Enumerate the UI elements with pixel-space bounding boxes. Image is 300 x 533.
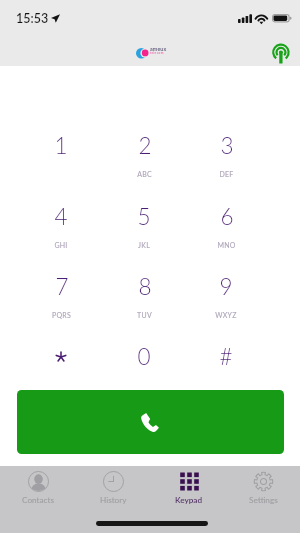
staticText: 3 [220,132,234,159]
staticText: PQRS [52,311,71,319]
staticText: 1 [54,132,68,159]
button[interactable]: 2 [105,132,183,188]
staticText: History [100,495,127,505]
button[interactable]: 3 [187,132,265,188]
button[interactable]: Contacts [1,469,75,509]
button[interactable]: 6 [187,203,265,259]
button[interactable]: Keypad [152,469,226,509]
staticText: DEF [219,170,234,178]
staticText: 5 [137,203,151,230]
staticText: ABC [137,170,152,178]
staticText: Settings [249,495,278,505]
staticText: Contacts [22,495,54,505]
button[interactable]: Connection status [269,41,292,66]
button[interactable]: 9 [187,273,265,329]
staticText: MNO [217,241,236,249]
button[interactable]: 8 [105,273,183,329]
button[interactable]: 4 [22,203,100,259]
staticText: JKL [138,241,150,249]
button[interactable]: Call [17,390,284,454]
staticText: WXYZ [215,311,237,319]
button[interactable]: 1 [22,132,100,188]
staticText: GHI [54,241,68,249]
button[interactable]: 7 [22,273,100,329]
button[interactable]: Settings [226,469,300,509]
staticText: # [219,343,233,370]
staticText: ameux [150,46,167,52]
staticText: 6 [220,203,234,230]
staticText: 4 [54,203,68,230]
button[interactable]: # [187,343,265,399]
staticText: 8 [138,273,152,300]
staticText: telecom [150,51,164,55]
staticText: 9 [219,273,233,300]
staticText: TUV [137,311,152,319]
staticText: 0 [137,343,151,370]
button[interactable] [22,343,100,399]
button[interactable]: 5 [105,203,183,259]
staticText: 2 [138,132,152,159]
staticText: Keypad [175,495,203,505]
button[interactable]: 0 [105,343,183,399]
staticText: 15:53 [16,11,49,26]
staticText: 7 [55,273,69,300]
button[interactable]: History [76,469,150,509]
